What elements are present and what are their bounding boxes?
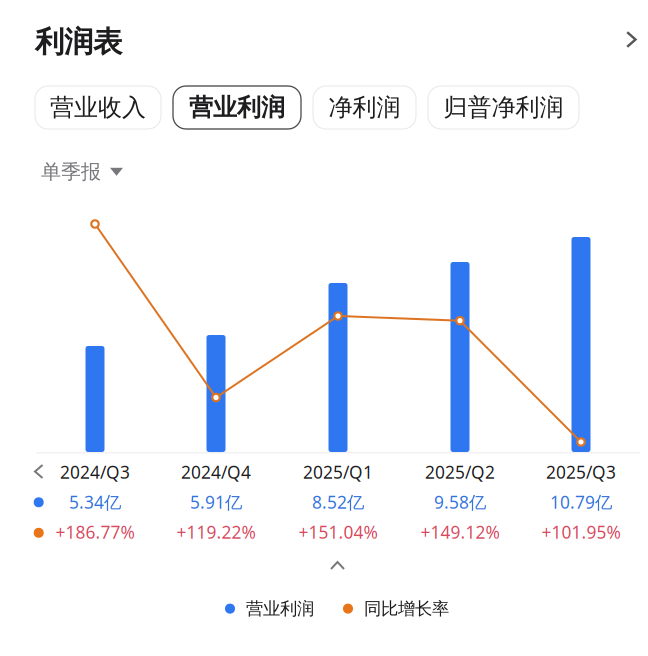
staticText: 同比增长率 [364, 598, 449, 619]
button[interactable]: More [616, 21, 647, 58]
staticText: 2025/Q1 [303, 460, 373, 483]
staticText: 营业利润 [246, 598, 314, 619]
staticText: 2025/Q2 [425, 460, 495, 483]
staticText: +186.77% [55, 520, 134, 543]
staticText: 8.52亿 [312, 490, 364, 513]
staticText: 2024/Q3 [60, 460, 130, 483]
staticText: 2024/Q4 [181, 460, 251, 483]
button[interactable]: 归普净利润 [428, 86, 579, 129]
staticText: 9.58亿 [434, 490, 486, 513]
staticText: 2025/Q3 [546, 460, 616, 483]
staticText: +101.95% [541, 520, 620, 543]
staticText: +119.22% [176, 520, 255, 543]
staticText: 营业收入 [50, 93, 146, 122]
button[interactable]: Collapse [322, 553, 353, 578]
staticText: 营业利润 [189, 93, 285, 122]
button[interactable]: Previous periods [26, 456, 52, 487]
staticText: 净利润 [328, 93, 400, 122]
button[interactable]: 单季报 [41, 159, 123, 184]
staticText: 归普净利润 [443, 93, 563, 122]
staticText: 5.91亿 [190, 490, 242, 513]
staticText: 利润表 [35, 24, 122, 60]
staticText: 10.79亿 [550, 490, 612, 513]
staticText: +149.12% [420, 520, 499, 543]
staticText: 5.34亿 [69, 490, 121, 513]
button[interactable]: 净利润 [313, 86, 416, 129]
staticText: +151.04% [298, 520, 377, 543]
button[interactable]: 营业收入 [35, 86, 161, 129]
staticText: 单季报 [41, 159, 101, 184]
button[interactable]: 营业利润 [173, 86, 301, 129]
